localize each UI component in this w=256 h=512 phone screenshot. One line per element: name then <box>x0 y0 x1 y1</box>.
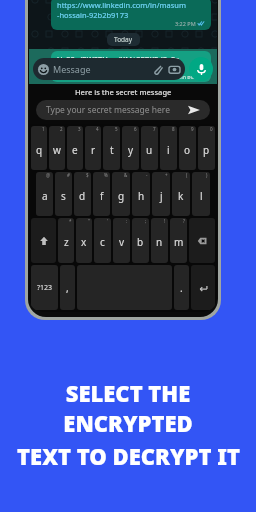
staticText: Today <box>114 35 133 44</box>
staticText: r <box>91 143 96 157</box>
staticText: TEXT TO DECRYPT IT <box>17 441 240 471</box>
button[interactable]: 1 <box>31 126 47 170</box>
button[interactable]: Emoji <box>33 58 185 80</box>
staticText: 0 <box>210 126 213 132</box>
staticText: ( <box>186 172 188 178</box>
staticText: Message <box>53 63 91 75</box>
button[interactable]: % <box>93 172 110 216</box>
button[interactable]: Send <box>188 104 200 116</box>
staticText: a <box>42 189 48 203</box>
staticText: ' <box>107 218 109 224</box>
staticText: z <box>64 235 69 249</box>
other: Emoji <box>38 64 49 75</box>
staticText: # <box>67 172 70 178</box>
staticText: p <box>203 143 210 157</box>
staticText: i <box>167 143 170 157</box>
button[interactable]: 9 <box>179 126 196 170</box>
staticText: : <box>126 218 128 224</box>
button[interactable]: 7 <box>141 126 158 170</box>
button[interactable]: ; <box>132 218 149 263</box>
button[interactable]: * <box>58 218 74 263</box>
staticText: Uv9So/RW0THwe/KM+2EBXEd8y9z XYGLiv1iI7Md… <box>57 54 179 74</box>
staticText: t <box>110 143 114 157</box>
staticText: 9 <box>191 126 194 132</box>
staticText: k <box>178 189 184 203</box>
button[interactable]: Enter <box>191 265 215 310</box>
button[interactable]: - <box>132 172 150 216</box>
button[interactable]: ) <box>192 172 210 216</box>
button[interactable]: " <box>76 218 92 263</box>
button[interactable]: ?123 <box>31 265 58 310</box>
button[interactable]: ( <box>172 172 190 216</box>
staticText: * <box>69 218 72 224</box>
staticText: 8 <box>172 126 175 132</box>
button[interactable]: https://www.linkedin.com/in/masum -hossa… <box>51 0 211 30</box>
button[interactable]: Camera <box>169 64 180 75</box>
staticText: 3:22 PM <box>175 20 196 27</box>
staticText: 5 <box>115 126 118 132</box>
staticText: Type your secret message here <box>46 104 170 116</box>
staticText: ! <box>164 218 166 224</box>
button[interactable]: ' <box>94 218 111 263</box>
button[interactable]: Backspace <box>189 218 215 263</box>
button[interactable]: + <box>152 172 170 216</box>
button[interactable]: ? <box>170 218 187 263</box>
staticText: y <box>128 143 134 157</box>
button[interactable]: 3 <box>67 126 83 170</box>
button[interactable]: Attach <box>152 64 163 75</box>
staticText: l <box>200 189 203 203</box>
staticText: w <box>53 143 61 157</box>
staticText: ? <box>183 218 185 224</box>
staticText: u <box>146 143 153 157</box>
staticText: f <box>100 189 104 203</box>
staticText: v <box>119 235 125 249</box>
button[interactable]: 0 <box>198 126 215 170</box>
staticText: https://www.linkedin.com/in/masum -hossa… <box>57 0 186 20</box>
button[interactable]: Type your secret message here <box>36 100 210 120</box>
staticText: g <box>118 189 125 203</box>
button[interactable]: , <box>60 265 75 310</box>
staticText: ) <box>206 172 208 178</box>
staticText: d <box>79 189 86 203</box>
button[interactable]: $ <box>74 172 91 216</box>
staticText: b <box>137 235 144 249</box>
button[interactable]: & <box>112 172 130 216</box>
staticText: s <box>61 189 66 203</box>
staticText: 3:00 PM <box>175 74 196 79</box>
staticText: - <box>146 172 148 178</box>
button[interactable]: Shift <box>31 218 56 263</box>
button[interactable]: Voice message <box>189 57 213 81</box>
staticText: h <box>138 189 145 203</box>
staticText: , <box>66 281 69 295</box>
staticText: q <box>36 143 43 157</box>
button[interactable]: . <box>174 265 189 310</box>
staticText: x <box>81 235 87 249</box>
button[interactable]: # <box>55 172 72 216</box>
staticText: " <box>88 218 90 224</box>
staticText: ?123 <box>37 283 53 293</box>
staticText: 3 <box>78 126 81 132</box>
staticText: n <box>156 235 163 249</box>
staticText: o <box>184 143 191 157</box>
staticText: 1 <box>42 126 45 132</box>
button[interactable]: 6 <box>122 126 139 170</box>
staticText: + <box>165 172 168 178</box>
staticText: % <box>104 172 108 178</box>
button[interactable]: ! <box>151 218 168 263</box>
button[interactable]: 4 <box>85 126 101 170</box>
button[interactable]: : <box>113 218 130 263</box>
button[interactable]: 2 <box>49 126 65 170</box>
staticText: 2 <box>60 126 63 132</box>
staticText: c <box>100 235 105 249</box>
button[interactable]: Uv9So/RW0THwe/KM+2EBXEd8y9z XYGLiv1iI7Md… <box>29 49 217 84</box>
staticText: 7 <box>153 126 156 132</box>
button[interactable]: 8 <box>160 126 177 170</box>
button[interactable]: @ <box>36 172 53 216</box>
staticText: 4 <box>96 126 99 132</box>
staticText: @ <box>46 172 51 178</box>
button[interactable]: 5 <box>103 126 120 170</box>
staticText: SELECT THE ENCRYPTED <box>0 378 256 438</box>
staticText: j <box>160 189 163 203</box>
staticText: . <box>180 281 183 295</box>
